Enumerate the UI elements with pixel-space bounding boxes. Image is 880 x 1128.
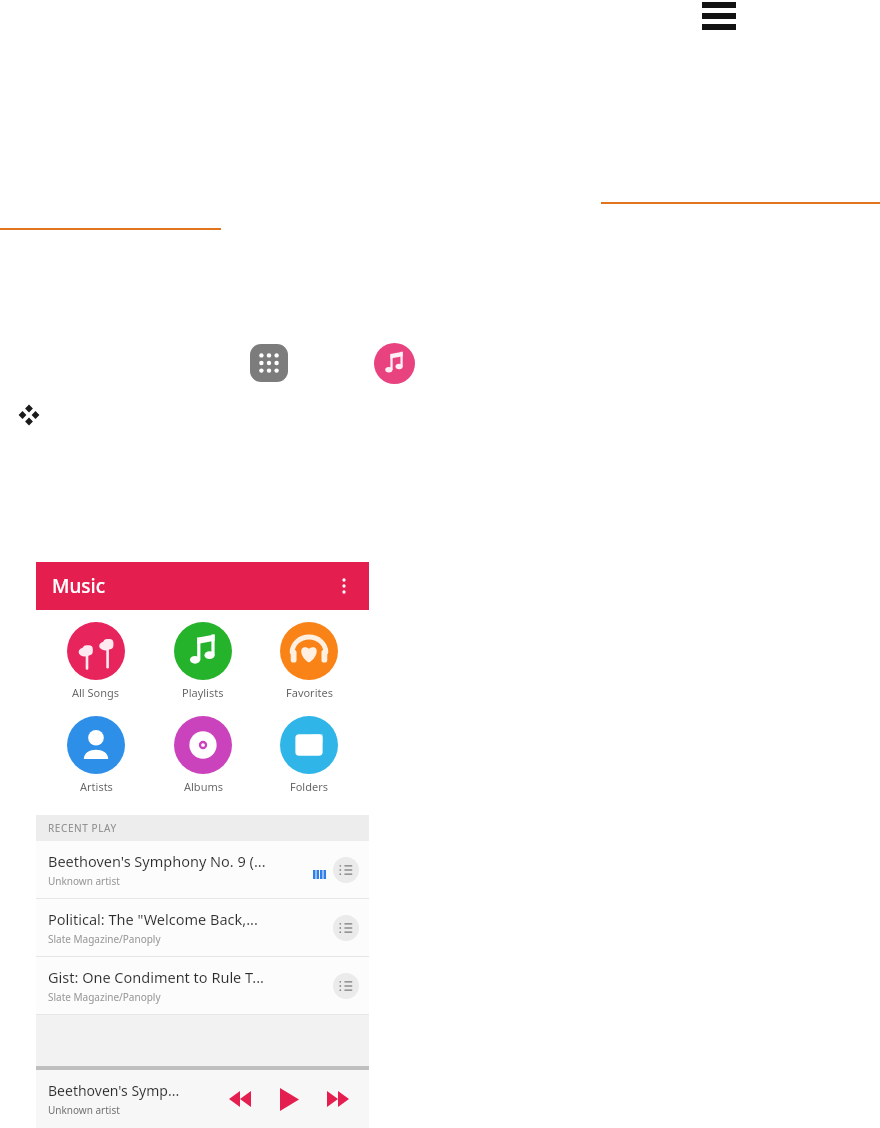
staticText: Folders xyxy=(290,779,328,794)
staticText: All Songs xyxy=(72,685,120,700)
button[interactable]: Political: The "Welcome Back,... xyxy=(36,899,369,957)
button[interactable]: Beethoven's Symp... xyxy=(48,1081,223,1117)
staticText: RECENT PLAY xyxy=(48,821,117,835)
button[interactable]: Beethoven's Symphony No. 9 (... xyxy=(36,841,369,899)
button[interactable]: Favorites xyxy=(262,620,356,702)
staticText: Unknown artist xyxy=(48,874,120,888)
button[interactable]: All Songs xyxy=(49,620,143,702)
button[interactable]: Queue xyxy=(333,915,359,941)
other: Move xyxy=(16,402,42,428)
button[interactable]: Music app xyxy=(374,343,415,384)
staticText: Slate Magazine/Panoply xyxy=(48,990,161,1004)
button[interactable]: Play xyxy=(271,1081,307,1117)
staticText: Favorites xyxy=(286,685,333,700)
staticText: Unknown artist xyxy=(48,1103,120,1117)
staticText: Artists xyxy=(80,779,113,794)
staticText: Political: The "Welcome Back,... xyxy=(48,909,258,929)
button[interactable]: Playlists xyxy=(156,620,250,702)
staticText: Beethoven's Symp... xyxy=(48,1081,180,1100)
button[interactable]: Queue xyxy=(333,973,359,999)
button[interactable]: Folders xyxy=(262,714,356,796)
staticText: Playlists xyxy=(182,685,224,700)
button[interactable]: Menu xyxy=(700,1,740,27)
button[interactable]: Previous xyxy=(223,1082,257,1116)
staticText: Gist: One Condiment to Rule T... xyxy=(48,967,264,987)
staticText: Slate Magazine/Panoply xyxy=(48,932,161,946)
button[interactable]: Artists xyxy=(49,714,143,796)
staticText: Beethoven's Symphony No. 9 (... xyxy=(48,851,266,871)
staticText: Albums xyxy=(184,779,223,794)
button[interactable]: Next xyxy=(321,1082,355,1116)
button[interactable]: All apps xyxy=(250,344,288,382)
button[interactable]: Queue xyxy=(333,857,359,883)
button[interactable]: Gist: One Condiment to Rule T... xyxy=(36,957,369,1015)
button[interactable]: Albums xyxy=(156,714,250,796)
staticText: Music xyxy=(52,573,106,599)
button[interactable]: More options xyxy=(329,571,359,601)
